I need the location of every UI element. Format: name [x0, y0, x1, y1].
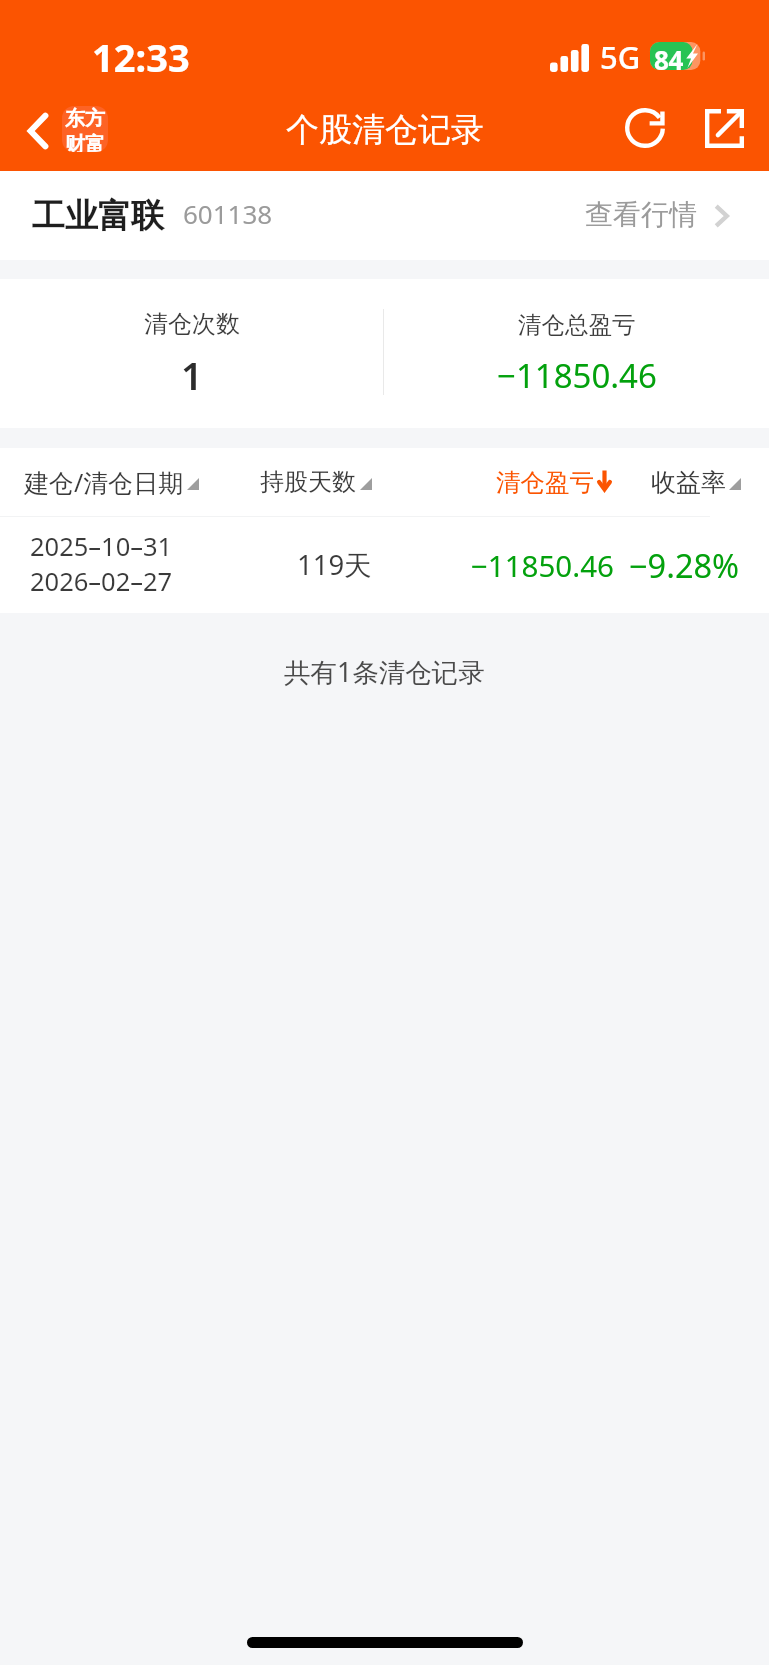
staticText: 清仓总盈亏	[518, 310, 636, 340]
staticText: 持股天数	[260, 467, 356, 497]
button[interactable]: Refresh	[617, 100, 673, 156]
staticText: −11850.46	[497, 353, 657, 398]
button[interactable]: 收益率	[641, 448, 751, 516]
button[interactable]: 查看行情	[571, 171, 758, 260]
button[interactable]: 持股天数	[250, 448, 382, 516]
staticText: −11850.46	[471, 545, 614, 585]
staticText: 查看行情	[585, 197, 697, 232]
staticText: 共有1条清仓记录	[284, 654, 485, 690]
staticText: 建仓/清仓日期	[24, 465, 184, 499]
button[interactable]: 工业富联	[20, 171, 285, 260]
button[interactable]: 清仓盈亏	[486, 448, 622, 516]
button[interactable]: 东方财富	[62, 106, 108, 152]
button[interactable]: 建仓/清仓日期	[14, 448, 209, 516]
staticText: 601138	[183, 196, 273, 231]
button[interactable]: 2025–10–31	[0, 517, 769, 613]
staticText: 119天	[297, 546, 372, 584]
staticText: −9.28%	[629, 543, 740, 587]
staticText: 收益率	[651, 467, 726, 498]
staticText: 财富	[65, 132, 105, 152]
staticText: 5G	[600, 36, 641, 78]
staticText: 1	[181, 349, 203, 401]
button[interactable]: Back	[10, 103, 66, 158]
staticText: 12:33	[92, 31, 190, 83]
staticText: 清仓盈亏	[496, 467, 594, 498]
staticText: 2026–02–27	[30, 564, 173, 599]
staticText: 清仓次数	[144, 309, 240, 339]
staticText: 2025–10–31	[30, 529, 173, 564]
button[interactable]: Share	[696, 100, 752, 156]
staticText: 个股清仓记录	[286, 109, 484, 151]
staticText: 东方	[65, 106, 105, 131]
staticText: 工业富联	[32, 195, 164, 237]
staticText: 84	[654, 42, 683, 70]
